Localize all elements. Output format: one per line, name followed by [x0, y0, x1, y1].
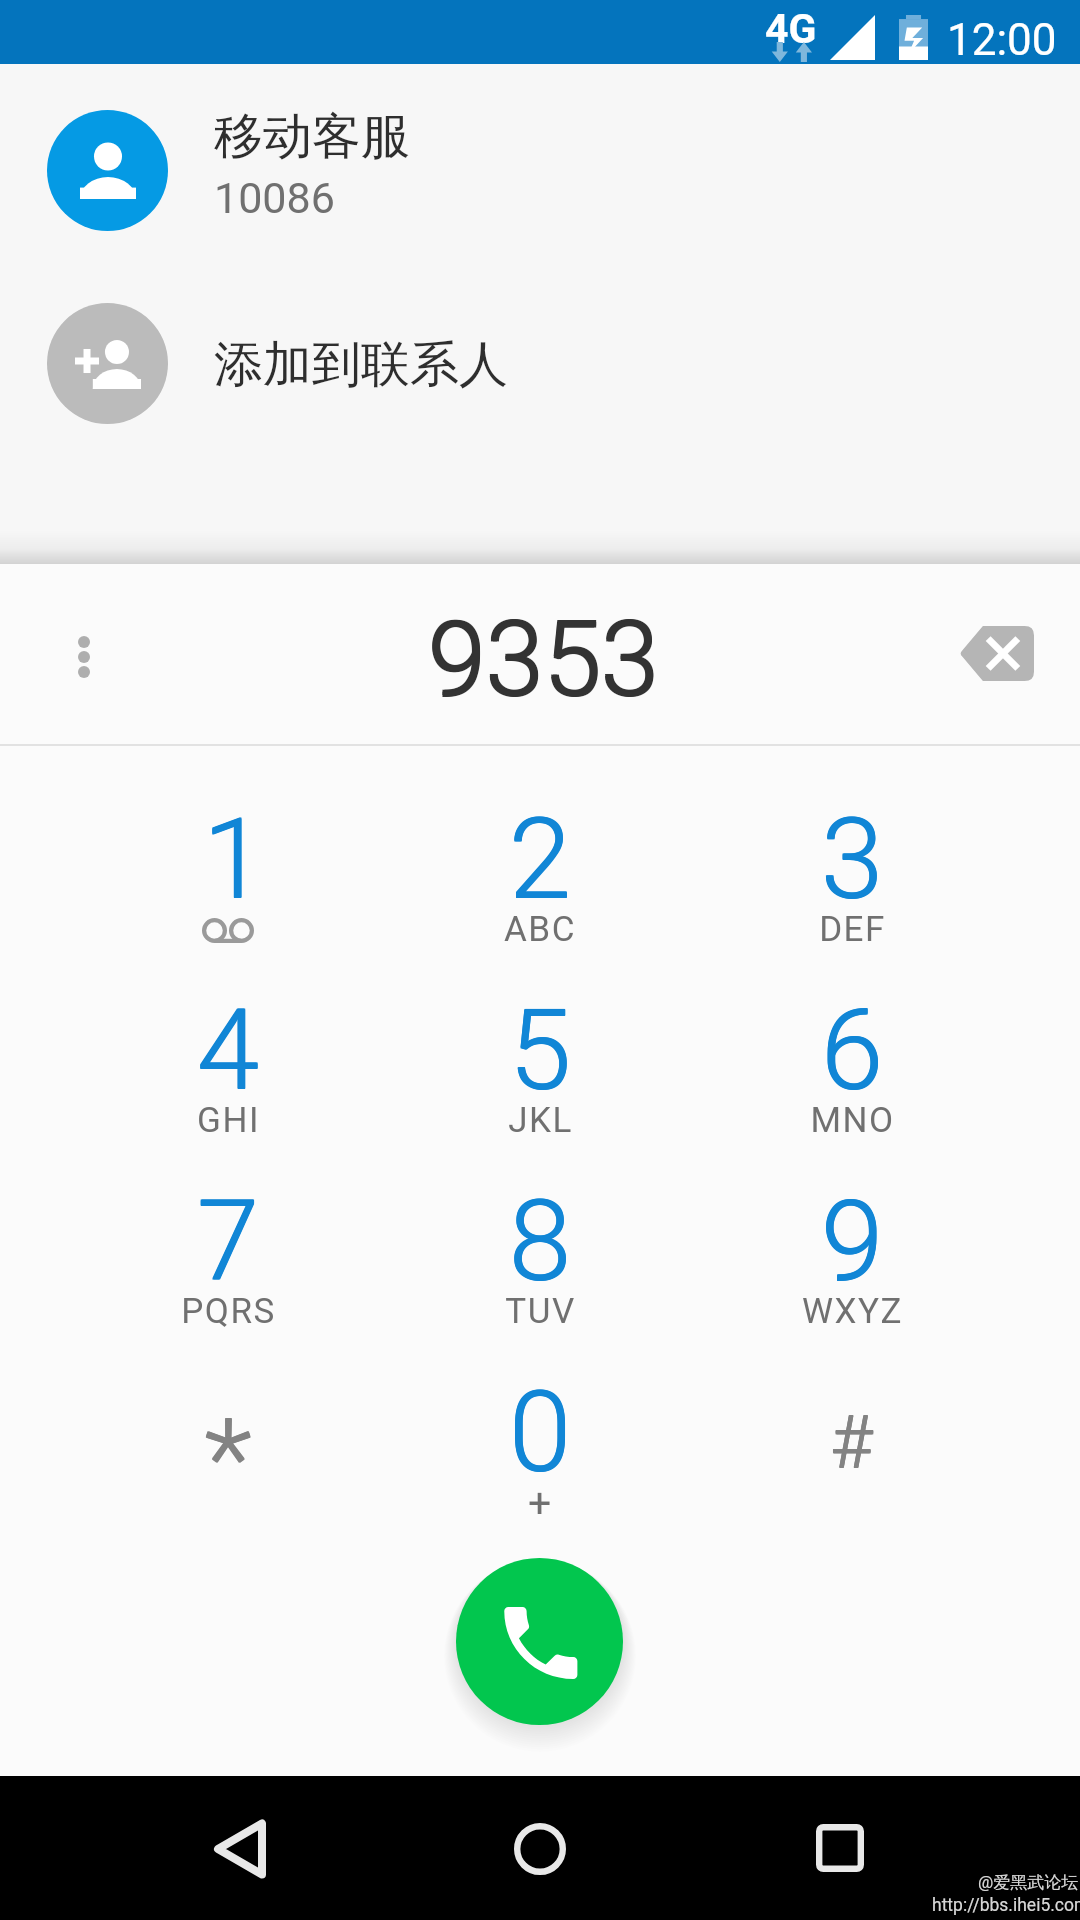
staticText: 0	[509, 1367, 572, 1498]
button[interactable]: 1	[72, 762, 384, 953]
staticText: 9	[820, 1175, 883, 1306]
staticText: 5	[509, 985, 572, 1116]
staticText: http://bbs.ihei5.com	[932, 1895, 1080, 1916]
staticText: WXYZ	[802, 1291, 903, 1332]
staticText: TUV	[505, 1291, 576, 1332]
staticText: 4	[196, 984, 259, 1115]
staticText: 9	[821, 1175, 884, 1306]
button[interactable]: *	[72, 1335, 384, 1526]
staticText: *	[204, 1394, 251, 1523]
staticText: JKL	[508, 1100, 573, 1141]
button[interactable]: 移动客服	[0, 74, 1080, 266]
staticText: 3	[821, 794, 884, 925]
staticText: 0	[509, 1366, 572, 1497]
staticText: 12:00	[947, 14, 1057, 66]
staticText: #	[830, 1400, 872, 1484]
staticText: 8	[508, 1175, 571, 1306]
staticText: 1	[202, 793, 265, 924]
staticText: 9353	[429, 598, 660, 720]
staticText: 添加到联系人	[214, 334, 508, 396]
staticText: 9	[820, 1176, 883, 1307]
button[interactable]: More options	[39, 610, 129, 700]
staticText: 10086	[214, 173, 335, 223]
button[interactable]: 9	[696, 1144, 1008, 1335]
staticText: 0	[508, 1367, 571, 1498]
button[interactable]: Delete	[942, 598, 1052, 708]
button[interactable]: 2	[384, 762, 696, 953]
staticText: +	[528, 1479, 552, 1527]
staticText: 8	[508, 1176, 571, 1307]
staticText: 4	[196, 985, 259, 1116]
staticText: *	[205, 1394, 252, 1523]
staticText: 8	[509, 1176, 572, 1307]
staticText: 3	[820, 793, 883, 924]
staticText: 2	[508, 794, 571, 925]
staticText: 3	[821, 793, 884, 924]
staticText: @爱黑武论坛	[978, 1872, 1079, 1893]
staticText: 1	[202, 794, 265, 925]
staticText: #	[831, 1400, 873, 1484]
staticText: 4G	[765, 5, 817, 53]
staticText: 2	[509, 794, 572, 925]
staticText: 5	[509, 984, 572, 1115]
button[interactable]: #	[696, 1335, 1008, 1526]
staticText: 移动客服	[214, 106, 410, 168]
staticText: 6	[820, 984, 883, 1115]
button[interactable]: 8	[384, 1144, 696, 1335]
staticText: 5	[508, 985, 571, 1116]
staticText: 4	[197, 984, 260, 1115]
button[interactable]: Call	[456, 1558, 623, 1725]
staticText: DEF	[819, 909, 886, 950]
staticText: #	[830, 1401, 872, 1485]
button[interactable]: 3	[696, 762, 1008, 953]
button[interactable]: Recents	[780, 1776, 900, 1920]
staticText: 4	[197, 985, 260, 1116]
staticText: #	[831, 1401, 873, 1485]
staticText: *	[204, 1395, 251, 1524]
staticText: 7	[196, 1175, 259, 1306]
button[interactable]: 0	[384, 1335, 696, 1526]
staticText: GHI	[197, 1100, 260, 1141]
staticText: *	[205, 1395, 252, 1524]
button[interactable]: Back	[180, 1776, 300, 1920]
button[interactable]: 5	[384, 953, 696, 1144]
staticText: 1	[203, 793, 266, 924]
staticText: 0	[508, 1366, 571, 1497]
staticText: 6	[821, 985, 884, 1116]
staticText: 9353	[427, 600, 658, 722]
staticText: PQRS	[181, 1291, 276, 1332]
staticText: 9	[821, 1176, 884, 1307]
staticText: 2	[508, 793, 571, 924]
staticText: ABC	[504, 909, 576, 950]
staticText: 7	[197, 1176, 260, 1307]
staticText: 5	[508, 984, 571, 1115]
staticText: 1	[203, 794, 266, 925]
button[interactable]: 7	[72, 1144, 384, 1335]
staticText: 8	[509, 1175, 572, 1306]
staticText: MNO	[810, 1100, 895, 1141]
button[interactable]: 4	[72, 953, 384, 1144]
staticText: 7	[197, 1175, 260, 1306]
staticText: 2	[509, 793, 572, 924]
staticText: 6	[820, 985, 883, 1116]
staticText: 9353	[427, 598, 658, 720]
staticText: 6	[821, 984, 884, 1115]
button[interactable]: Home	[480, 1776, 600, 1920]
button[interactable]: 添加到联系人	[0, 267, 1080, 459]
staticText: 3	[820, 794, 883, 925]
staticText: 7	[196, 1176, 259, 1307]
button[interactable]: 6	[696, 953, 1008, 1144]
staticText: 9353	[429, 600, 660, 722]
